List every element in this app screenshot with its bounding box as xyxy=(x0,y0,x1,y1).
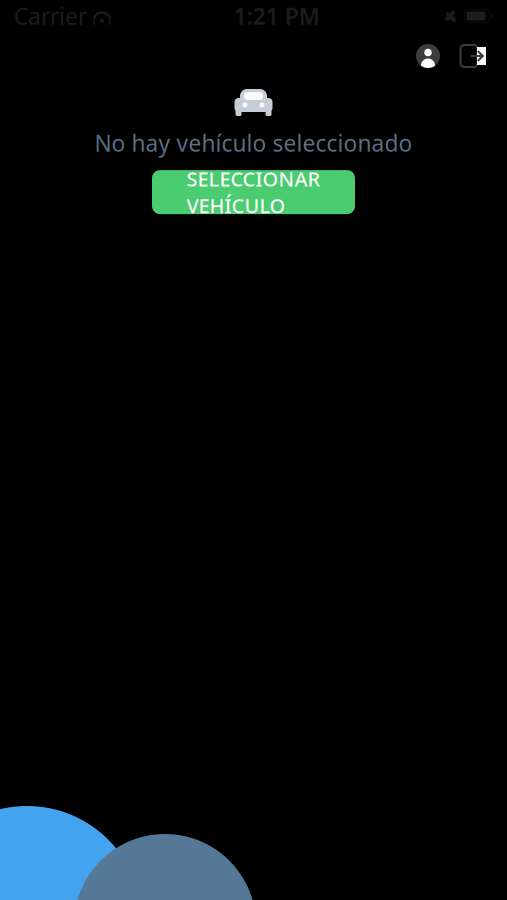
button[interactable]: Account xyxy=(406,34,450,78)
staticText: Carrier xyxy=(14,1,87,31)
button[interactable]: SELECCIONAR VEHÍCULO xyxy=(152,170,355,214)
staticText: 1:21 PM xyxy=(234,1,320,31)
staticText: SELECCIONAR VEHÍCULO xyxy=(186,165,320,219)
staticText: No hay vehículo seleccionado xyxy=(94,128,412,158)
button[interactable]: Log out xyxy=(450,34,494,78)
